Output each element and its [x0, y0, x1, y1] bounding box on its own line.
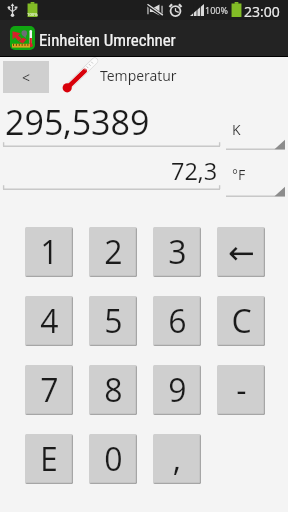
staticText: 295,5389 — [5, 99, 150, 145]
staticText: Einheiten Umrechner — [39, 30, 176, 50]
staticText: 72,3 — [171, 155, 218, 187]
button[interactable]: 6 — [153, 296, 201, 346]
staticText: Temperatur — [100, 66, 177, 85]
staticText: 9 — [168, 368, 187, 412]
staticText: 6 — [168, 299, 187, 343]
button[interactable]: C — [217, 296, 265, 346]
staticText: < — [22, 68, 31, 87]
button[interactable]: , — [153, 434, 201, 484]
button[interactable]: 5 — [89, 296, 137, 346]
button[interactable]: 4 — [25, 296, 73, 346]
staticText: 3 — [168, 230, 187, 274]
button[interactable]: E — [25, 434, 73, 484]
staticText: C — [231, 299, 252, 343]
staticText: 2 — [104, 230, 123, 274]
staticText: 100% — [27, 12, 38, 18]
staticText: 8 — [104, 368, 123, 412]
staticText: 5 — [104, 299, 123, 343]
button[interactable]: 7 — [25, 365, 73, 415]
button[interactable]: < — [3, 61, 49, 93]
staticText: 7 — [40, 368, 59, 412]
staticText: - — [236, 368, 247, 412]
staticText: 1 — [40, 230, 59, 274]
button[interactable]: 2 — [89, 227, 137, 277]
staticText: 100% — [205, 4, 228, 16]
staticText: 23:00 — [244, 2, 280, 21]
button[interactable]: 8 — [89, 365, 137, 415]
button[interactable]: 0 — [89, 434, 137, 484]
button[interactable]: 3 — [153, 227, 201, 277]
staticText: ← — [228, 234, 255, 271]
button[interactable]: 1 — [25, 227, 73, 277]
staticText: 0 — [104, 437, 123, 481]
staticText: 4 — [40, 299, 59, 343]
staticText: , — [173, 437, 181, 481]
staticText: E — [40, 437, 58, 481]
button[interactable]: ← — [217, 227, 265, 277]
staticText: °F — [232, 165, 246, 184]
button[interactable]: - — [217, 365, 265, 415]
button[interactable]: 9 — [153, 365, 201, 415]
staticText: K — [232, 120, 241, 139]
